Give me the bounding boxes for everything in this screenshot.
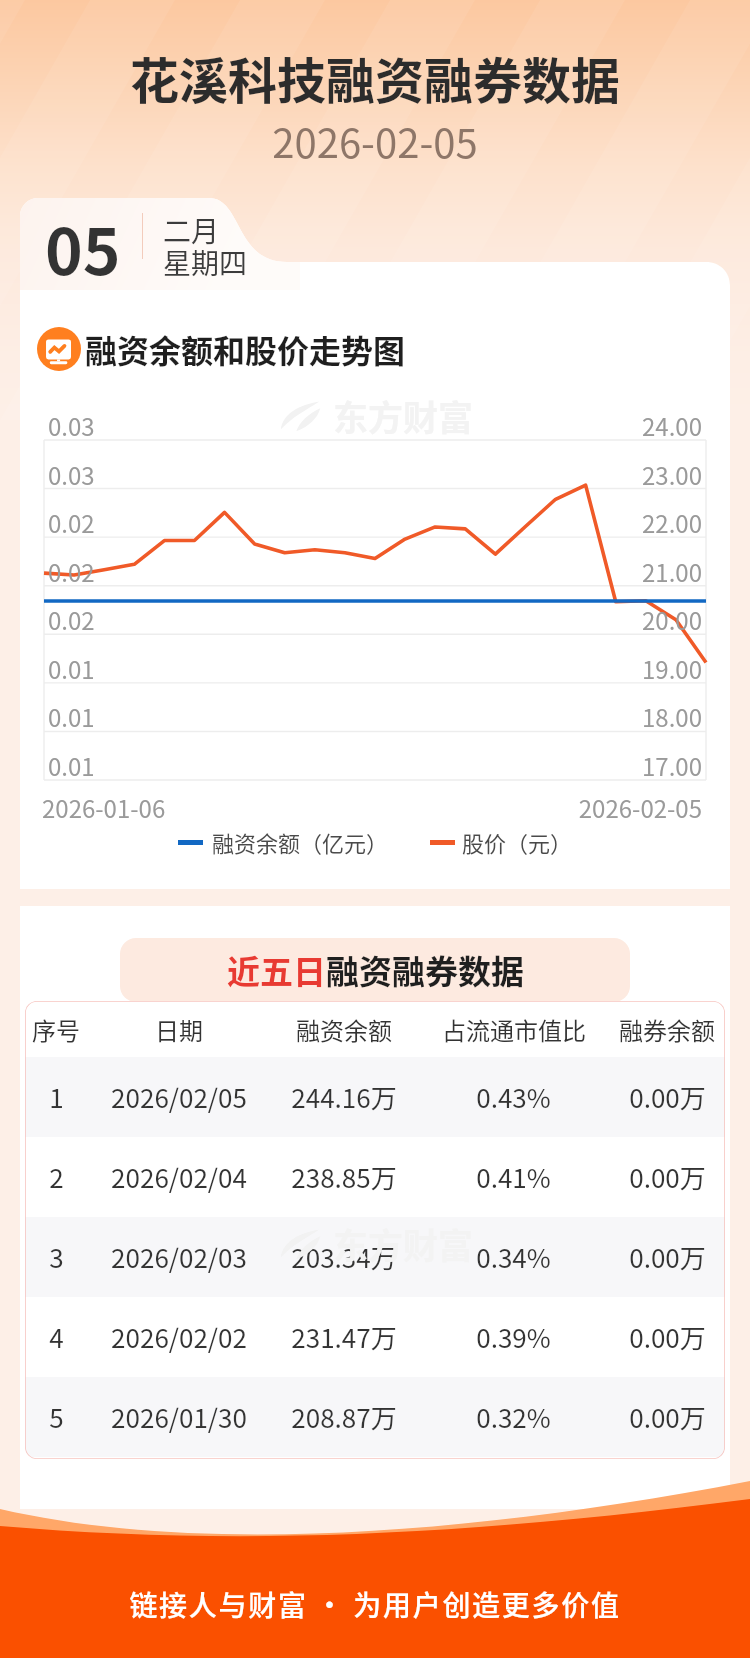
button[interactable]: 1 xyxy=(25,1057,725,1137)
staticText: 日期 xyxy=(155,1012,203,1047)
staticText: 0.32% xyxy=(476,1398,551,1436)
staticText: 203.34万 xyxy=(291,1238,397,1276)
staticText: 4 xyxy=(49,1318,64,1356)
staticText: 17.00 xyxy=(636,748,702,783)
staticText: 0.02 xyxy=(48,505,95,540)
staticText: 东方财富 xyxy=(333,390,474,441)
button[interactable]: 4 xyxy=(25,1297,725,1377)
button[interactable]: 2 xyxy=(25,1137,725,1217)
staticText: 2026-02-05 xyxy=(0,112,750,170)
staticText: 238.85万 xyxy=(291,1158,397,1196)
staticText: 2026-01-06 xyxy=(42,790,166,825)
staticText: 2026/01/30 xyxy=(111,1398,247,1436)
staticText: 208.87万 xyxy=(291,1398,397,1436)
staticText: 0.00万 xyxy=(629,1238,706,1276)
staticText: 231.47万 xyxy=(291,1318,397,1356)
staticText: 二月 xyxy=(163,210,220,251)
staticText: 0.34% xyxy=(476,1238,551,1276)
staticText: 0.01 xyxy=(48,651,95,686)
staticText: 序号 xyxy=(32,1012,80,1047)
staticText: 0.03 xyxy=(48,457,95,492)
staticText: 星期四 xyxy=(163,242,248,283)
staticText: 05 xyxy=(45,201,121,294)
staticText: 0.00万 xyxy=(629,1398,706,1436)
staticText: 24.00 xyxy=(636,408,702,443)
staticText: 0.03 xyxy=(48,408,95,443)
staticText: 0.01 xyxy=(48,699,95,734)
staticText: 23.00 xyxy=(636,457,702,492)
staticText: 融资余额 xyxy=(296,1012,392,1047)
staticText: 0.00万 xyxy=(629,1158,706,1196)
staticText: 19.00 xyxy=(636,651,702,686)
button[interactable]: 序号 xyxy=(25,1001,725,1057)
staticText: 0.01 xyxy=(48,748,95,783)
staticText: 0.43% xyxy=(476,1078,551,1116)
staticText: 2026/02/04 xyxy=(111,1158,247,1196)
staticText: 18.00 xyxy=(636,699,702,734)
staticText: 融券余额 xyxy=(619,1012,715,1047)
staticText: 股价（元） xyxy=(462,826,573,858)
staticText: 2026/02/03 xyxy=(111,1238,247,1276)
staticText: 0.02 xyxy=(48,602,95,637)
staticText: 0.41% xyxy=(476,1158,551,1196)
staticText: 3 xyxy=(49,1238,64,1276)
staticText: 融资余额（亿元） xyxy=(212,826,389,858)
staticText: 占流通市值比 xyxy=(442,1012,586,1047)
staticText: 0.00万 xyxy=(629,1318,706,1356)
staticText: 融资余额和股价走势图 xyxy=(85,326,406,372)
staticText: 链接人与财富 · 为用户创造更多价值 xyxy=(0,1584,750,1625)
staticText: 近五日融资融券数据 xyxy=(227,946,524,994)
staticText: 20.00 xyxy=(636,602,702,637)
staticText: 21.00 xyxy=(636,554,702,589)
staticText: 244.16万 xyxy=(291,1078,397,1116)
other: 走势图 xyxy=(37,327,81,371)
button[interactable]: 3 xyxy=(25,1217,725,1297)
staticText: 5 xyxy=(49,1398,64,1436)
staticText: 0.39% xyxy=(476,1318,551,1356)
staticText: 1 xyxy=(49,1078,64,1116)
staticText: 东方财富 xyxy=(333,1218,474,1269)
button[interactable]: 5 xyxy=(25,1377,725,1457)
staticText: 2026/02/02 xyxy=(111,1318,247,1356)
staticText: 0.00万 xyxy=(629,1078,706,1116)
staticText: 22.00 xyxy=(636,505,702,540)
staticText: 0.02 xyxy=(48,554,95,589)
staticText: 2 xyxy=(49,1158,64,1196)
staticText: 2026-02-05 xyxy=(576,790,702,825)
staticText: 花溪科技融资融券数据 xyxy=(0,42,750,113)
staticText: 2026/02/05 xyxy=(111,1078,247,1116)
